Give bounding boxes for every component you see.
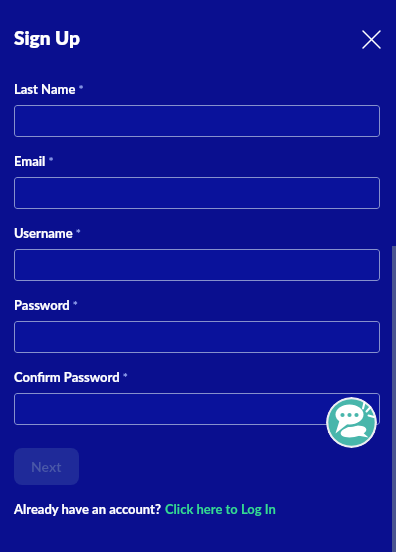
staticText: Next <box>31 458 62 475</box>
staticText: Sign Up <box>14 26 80 49</box>
button[interactable] <box>326 397 377 448</box>
staticText: Last Name * <box>14 81 84 97</box>
staticText: Already have an account? <box>14 501 165 517</box>
button[interactable] <box>14 393 380 425</box>
button[interactable]: Next <box>14 448 79 485</box>
button[interactable] <box>14 321 380 353</box>
button[interactable] <box>357 25 385 53</box>
button[interactable] <box>14 177 380 209</box>
button[interactable] <box>14 105 380 137</box>
staticText: Email * <box>14 153 54 169</box>
button[interactable] <box>14 249 380 281</box>
staticText: Confirm Password * <box>14 369 128 385</box>
staticText: Username * <box>14 225 81 241</box>
staticText: Password * <box>14 297 78 313</box>
button[interactable]: Click here to Log In <box>165 501 276 517</box>
